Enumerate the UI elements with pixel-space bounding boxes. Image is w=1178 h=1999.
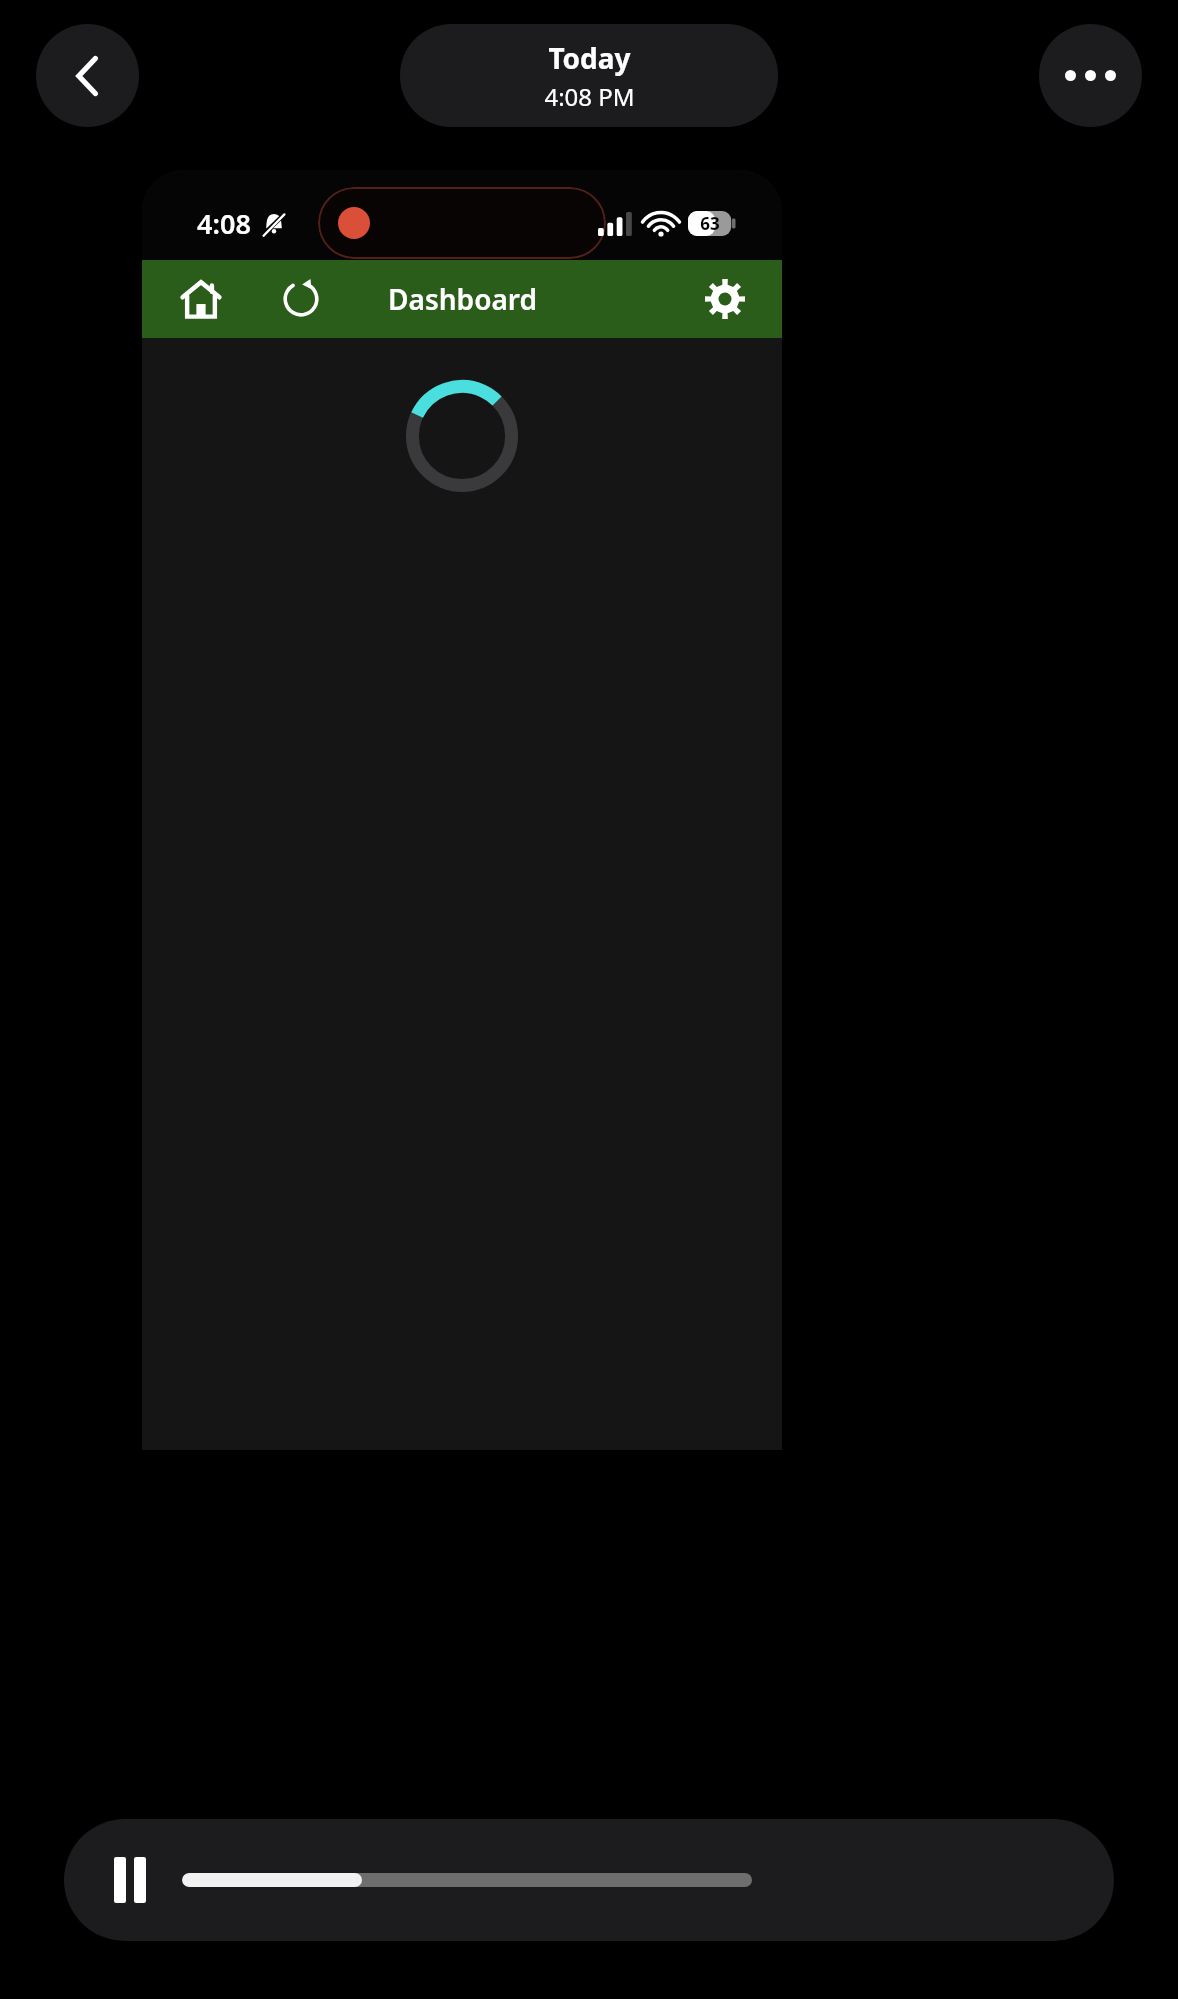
staticText: 63 [700, 212, 720, 235]
staticText: Dashboard [388, 280, 537, 318]
button[interactable]: Settings [694, 268, 756, 330]
button[interactable]: Today [400, 24, 778, 127]
staticText: 4:08 [197, 205, 251, 242]
staticText: 4:08 PM [544, 80, 635, 113]
button[interactable]: Home [170, 268, 232, 330]
button[interactable]: Back [36, 24, 139, 127]
button[interactable]: Pause [94, 1844, 166, 1916]
staticText: Today [548, 39, 631, 77]
button[interactable]: Seek bar [182, 1873, 752, 1887]
button[interactable]: More options [1039, 24, 1142, 127]
button[interactable]: Refresh [270, 268, 332, 330]
